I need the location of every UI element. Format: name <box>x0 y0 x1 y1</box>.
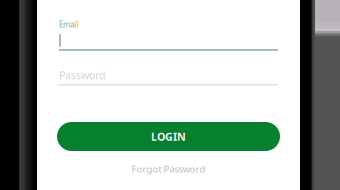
staticText: Password <box>59 68 106 82</box>
staticText: Email <box>59 19 78 30</box>
staticText: LOGIN <box>151 129 186 144</box>
staticText: Forgot Password <box>131 163 205 175</box>
button[interactable]: LOGIN <box>57 122 280 151</box>
button[interactable]: Forgot Password <box>37 163 300 175</box>
